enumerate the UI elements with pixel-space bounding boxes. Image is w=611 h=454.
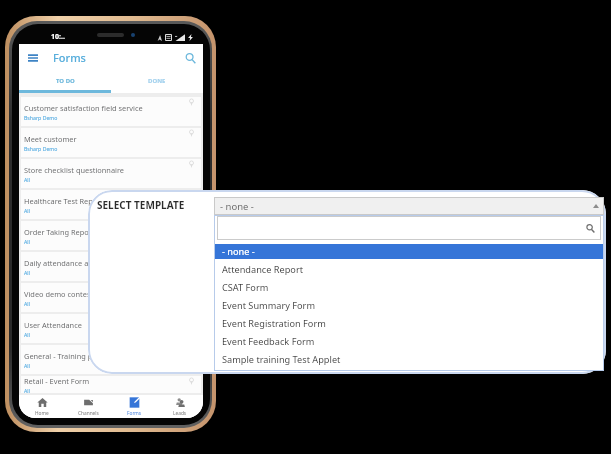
button[interactable]: Leads [157,395,203,418]
button[interactable]: Search [181,49,199,67]
button[interactable]: Forms [111,395,157,418]
button[interactable]: Healthcare Test Report [21,190,201,221]
button[interactable]: Video demo contest [21,283,201,314]
staticText: General - Training programs [24,351,122,361]
staticText: Bsharp Demo [24,114,58,121]
staticText: - none - [222,245,255,258]
button[interactable]: General - Training programs [21,345,201,376]
staticText: All [24,387,30,394]
button[interactable]: Order Taking Report [21,221,201,252]
staticText: - none - [220,200,254,213]
staticText: Meet customer [24,134,77,144]
staticText: Channels [78,410,99,417]
staticText: Bsharp Demo [24,145,58,152]
staticText: Leads [173,410,187,417]
staticText: Home [35,410,49,417]
staticText: CSAT Form [222,281,269,294]
button[interactable]: TO DO [19,71,111,90]
staticText: Event Registration Form [222,317,326,330]
staticText: All [24,269,30,276]
button[interactable]: Search templates [217,216,601,240]
staticText: All [24,362,30,369]
button[interactable]: Event Summary Form [214,296,604,314]
button[interactable]: User Attendance [21,314,201,345]
button[interactable]: Channels [65,395,111,418]
staticText: All [24,331,30,338]
button[interactable]: Retail - Event Form [21,376,201,395]
staticText: TO DO [56,77,75,85]
staticText: Event Summary Form [222,299,315,312]
staticText: Video demo contest [24,289,94,299]
staticText: Event Feedback Form [222,335,315,348]
button[interactable]: Meet customer [21,128,201,159]
staticText: Forms [127,410,142,417]
staticText: Retail - Event Form [24,376,90,386]
button[interactable]: - none - [214,242,604,260]
staticText: All [24,300,30,307]
button[interactable]: Menu [24,49,42,67]
staticText: All [24,238,30,245]
staticText: SELECT TEMPLATE [97,198,185,212]
button[interactable]: Sample training Test Applet [214,350,604,368]
button[interactable]: Store checklist questionnaire [21,159,201,190]
staticText: Healthcare Test Report [24,196,104,206]
button[interactable]: - none - [214,197,604,215]
button[interactable]: Attendance Report [214,260,604,278]
staticText: Daily attendance and visit [24,258,114,268]
staticText: All [24,207,30,214]
staticText: Store checklist questionnaire [24,165,125,175]
staticText: Sample training Test Applet [222,353,341,366]
staticText: Forms [53,50,86,65]
button[interactable]: Daily attendance and visit [21,252,201,283]
button[interactable]: Customer satisfaction field service [21,97,201,128]
button[interactable]: Event Registration Form [214,314,604,332]
button[interactable]: DONE [111,71,203,90]
staticText: Order Taking Report [24,227,95,237]
staticText: User Attendance [24,320,82,330]
staticText: DONE [148,77,166,85]
button[interactable]: Home [19,395,65,418]
staticText: 10:.. [51,32,65,42]
staticText: Customer satisfaction field service [24,103,143,113]
staticText: Attendance Report [222,263,304,276]
staticText: All [24,176,30,183]
button[interactable]: Event Feedback Form [214,332,604,350]
button[interactable]: CSAT Form [214,278,604,296]
